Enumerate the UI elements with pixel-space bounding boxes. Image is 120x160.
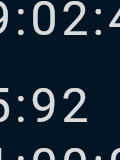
staticText: 9:02:45 — [0, 0, 120, 46]
staticText: 5:92 — [0, 77, 93, 133]
staticText: 1:00:0 — [0, 137, 120, 160]
